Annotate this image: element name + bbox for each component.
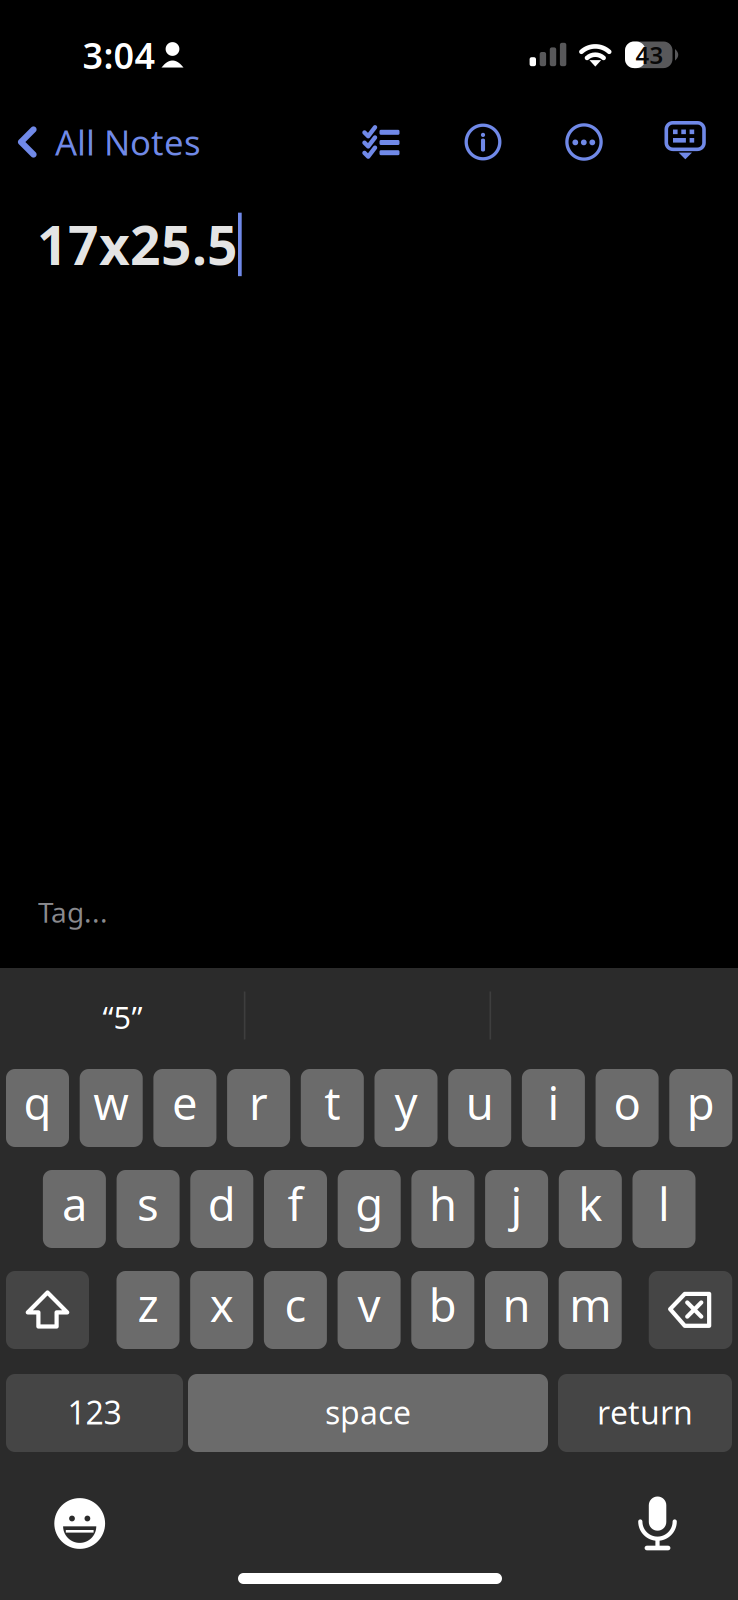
- staticText: k: [578, 1173, 602, 1234]
- button[interactable]: f: [264, 1170, 327, 1248]
- button[interactable]: y: [374, 1069, 437, 1147]
- button[interactable]: o: [596, 1069, 659, 1147]
- button[interactable]: 123: [6, 1374, 183, 1452]
- staticText: 123: [67, 1391, 121, 1433]
- staticText: a: [62, 1173, 87, 1234]
- button[interactable]: space: [188, 1374, 548, 1452]
- staticText: u: [466, 1072, 494, 1133]
- button[interactable]: u: [448, 1069, 511, 1147]
- button[interactable]: h: [411, 1170, 474, 1248]
- button[interactable]: e: [153, 1069, 216, 1147]
- button[interactable]: Delete: [649, 1271, 732, 1349]
- staticText: space: [325, 1391, 411, 1433]
- button[interactable]: t: [301, 1069, 364, 1147]
- staticText: q: [23, 1072, 51, 1133]
- staticText: c: [284, 1274, 306, 1335]
- button[interactable]: b: [411, 1271, 474, 1349]
- staticText: b: [429, 1274, 457, 1335]
- staticText: h: [429, 1173, 457, 1234]
- button[interactable]: All Notes: [1, 104, 219, 180]
- button[interactable]: Hide keyboard: [653, 110, 717, 174]
- staticText: p: [687, 1072, 715, 1133]
- staticText: r: [249, 1072, 268, 1133]
- staticText: e: [172, 1072, 198, 1133]
- button[interactable]: l: [632, 1170, 695, 1248]
- staticText: l: [658, 1173, 670, 1234]
- staticText: i: [547, 1072, 559, 1133]
- staticText: m: [569, 1274, 611, 1335]
- button[interactable]: v: [338, 1271, 401, 1349]
- button[interactable]: d: [190, 1170, 253, 1248]
- button[interactable]: m: [559, 1271, 622, 1349]
- staticText: s: [137, 1173, 159, 1234]
- staticText: o: [614, 1072, 641, 1133]
- button[interactable]: a: [43, 1170, 106, 1248]
- staticText: y: [394, 1072, 417, 1133]
- staticText: Tag...: [38, 893, 108, 931]
- staticText: t: [324, 1072, 340, 1133]
- button[interactable]: Emoji keyboard: [54, 1498, 105, 1549]
- staticText: j: [511, 1173, 523, 1234]
- staticText: w: [93, 1072, 129, 1133]
- button[interactable]: Info: [451, 110, 515, 174]
- staticText: v: [358, 1274, 381, 1335]
- button[interactable]: r: [227, 1069, 290, 1147]
- staticText: f: [287, 1173, 303, 1234]
- staticText: g: [355, 1173, 383, 1234]
- button[interactable]: Checklist: [350, 110, 414, 174]
- button[interactable]: s: [117, 1170, 180, 1248]
- staticText: “5”: [102, 997, 142, 1037]
- staticText: return: [597, 1391, 693, 1433]
- button[interactable]: Tag...: [0, 884, 738, 940]
- button[interactable]: Dictate: [640, 1496, 675, 1552]
- button[interactable]: k: [559, 1170, 622, 1248]
- button[interactable]: q: [6, 1069, 69, 1147]
- button[interactable]: w: [80, 1069, 143, 1147]
- staticText: x: [210, 1274, 234, 1335]
- button[interactable]: Shift: [6, 1271, 89, 1349]
- staticText: 17x25.5: [37, 209, 238, 280]
- staticText: 43: [635, 39, 663, 71]
- button[interactable]: j: [485, 1170, 548, 1248]
- staticText: n: [502, 1274, 530, 1335]
- button[interactable]: More options: [552, 110, 616, 174]
- staticText: z: [137, 1274, 158, 1335]
- button[interactable]: g: [338, 1170, 401, 1248]
- button[interactable]: c: [264, 1271, 327, 1349]
- button[interactable]: i: [522, 1069, 585, 1147]
- staticText: All Notes: [55, 119, 201, 165]
- staticText: d: [208, 1173, 236, 1234]
- button[interactable]: p: [669, 1069, 732, 1147]
- button[interactable]: z: [116, 1271, 179, 1349]
- button[interactable]: n: [485, 1271, 548, 1349]
- button[interactable]: return: [558, 1374, 732, 1452]
- staticText: 3:04: [82, 31, 155, 79]
- button[interactable]: x: [190, 1271, 253, 1349]
